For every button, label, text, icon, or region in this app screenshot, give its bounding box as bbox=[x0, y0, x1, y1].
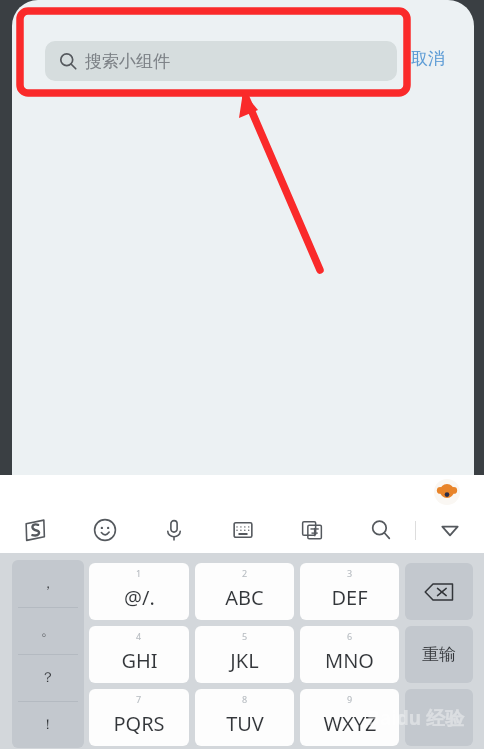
button[interactable]: Hide keyboard bbox=[415, 507, 484, 553]
staticText: WXYZ bbox=[323, 710, 377, 737]
button[interactable]: 重输 bbox=[405, 626, 473, 683]
button[interactable]: Emoji bbox=[70, 507, 139, 553]
button[interactable]: Search bbox=[346, 507, 415, 553]
button[interactable]: Voice input bbox=[139, 507, 208, 553]
button[interactable]: Backspace bbox=[405, 563, 473, 620]
staticText: DEF bbox=[331, 584, 368, 611]
button[interactable] bbox=[405, 689, 473, 746]
staticText: 搜索小组件 bbox=[85, 51, 170, 72]
staticText: 。 bbox=[41, 622, 55, 640]
staticText: 重输 bbox=[422, 644, 456, 665]
button[interactable]: ！ bbox=[12, 702, 84, 748]
staticText: 7 bbox=[136, 693, 142, 705]
staticText: ！ bbox=[41, 716, 55, 734]
staticText: 取消 bbox=[411, 48, 445, 69]
button[interactable]: 6 bbox=[300, 626, 399, 683]
other: Input method badge bbox=[434, 479, 460, 505]
button[interactable]: 1 bbox=[89, 563, 189, 620]
staticText: ABC bbox=[225, 584, 264, 611]
staticText: 4 bbox=[136, 630, 142, 642]
button[interactable]: Keyboard layout bbox=[208, 507, 277, 553]
other: Search bbox=[59, 52, 77, 70]
staticText: JKL bbox=[230, 647, 259, 674]
staticText: 8 bbox=[242, 693, 248, 705]
staticText: MNO bbox=[325, 647, 374, 674]
button[interactable]: 5 bbox=[195, 626, 294, 683]
staticText: ？ bbox=[41, 669, 55, 687]
staticText: TUV bbox=[226, 710, 264, 737]
staticText: 5 bbox=[242, 630, 248, 642]
staticText: Baidu 经验 bbox=[367, 705, 464, 731]
staticText: 2 bbox=[242, 567, 248, 579]
staticText: 1 bbox=[136, 567, 142, 579]
button[interactable]: 7 bbox=[89, 689, 189, 746]
button[interactable]: 取消 bbox=[409, 46, 447, 71]
staticText: 3 bbox=[347, 567, 353, 579]
staticText: 9 bbox=[347, 693, 353, 705]
staticText: PQRS bbox=[113, 710, 165, 737]
button[interactable]: ， bbox=[12, 560, 84, 607]
button[interactable]: 3 bbox=[300, 563, 399, 620]
button[interactable]: 9 bbox=[300, 689, 399, 746]
button[interactable]: ？ bbox=[12, 655, 84, 701]
button[interactable]: Sogou input bbox=[0, 507, 70, 553]
button[interactable]: 2 bbox=[195, 563, 294, 620]
staticText: GHI bbox=[121, 647, 158, 674]
staticText: @/. bbox=[124, 584, 155, 611]
button[interactable]: Translate bbox=[277, 507, 346, 553]
staticText: ， bbox=[41, 575, 55, 593]
button[interactable]: Search bbox=[45, 41, 397, 81]
button[interactable]: 8 bbox=[195, 689, 294, 746]
button[interactable]: 4 bbox=[89, 626, 189, 683]
staticText: 6 bbox=[347, 630, 353, 642]
